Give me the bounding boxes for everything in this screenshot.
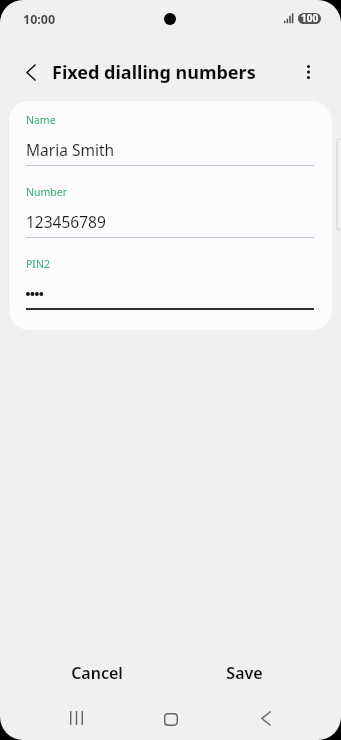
staticText: Fixed dialling numbers [52,60,256,85]
staticText: 100 [301,13,319,22]
staticText: Save [226,662,263,684]
button[interactable]: PIN2 field [26,251,314,311]
staticText: 123456789 [26,211,106,232]
button[interactable]: Home [151,699,191,739]
button[interactable]: Navigate up [9,50,53,94]
button[interactable]: Save [170,655,318,691]
button[interactable]: Number field, 123456789 [26,179,314,239]
staticText: Maria Smith [26,139,115,160]
staticText: PIN2 [26,257,50,271]
staticText: Cancel [71,662,123,684]
button[interactable]: Name field, Maria Smith [26,107,314,167]
button[interactable]: Recent apps [56,698,96,738]
staticText: 10:00 [23,11,56,28]
staticText: Name [26,113,56,127]
button[interactable]: Back [246,698,286,738]
staticText: Number [26,185,68,199]
button[interactable]: Cancel [23,655,170,691]
button[interactable]: More options [286,50,330,94]
